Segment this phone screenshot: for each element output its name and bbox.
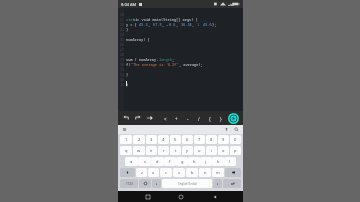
staticText: ;	[172, 57, 175, 62]
button[interactable]: Backspace	[225, 168, 241, 177]
button[interactable]: ?123	[120, 179, 138, 188]
button[interactable]: i	[206, 146, 217, 155]
staticText: m	[216, 170, 220, 175]
button[interactable]: 2	[133, 135, 145, 144]
staticText: y	[186, 148, 189, 153]
staticText: k	[217, 159, 220, 164]
button[interactable]: b	[186, 168, 198, 177]
button[interactable]: 9	[218, 135, 229, 144]
button[interactable]: 7	[194, 135, 205, 144]
staticText: 1	[125, 137, 128, 142]
staticText: v	[178, 170, 181, 175]
staticText: f	[169, 159, 171, 164]
staticText: 8.6	[169, 22, 176, 27]
staticText: 34	[120, 83, 124, 87]
button[interactable]: e	[146, 146, 157, 155]
staticText: <	[164, 116, 167, 122]
button[interactable]: Menu	[122, 127, 127, 132]
button[interactable]: k	[212, 157, 224, 166]
staticText: 33	[120, 78, 124, 82]
button[interactable]: English (India)	[162, 179, 212, 188]
button[interactable]: Tab	[146, 114, 154, 122]
button[interactable]: t	[170, 146, 181, 155]
staticText: "The average is: %.2f"	[131, 62, 179, 67]
button[interactable]: q	[120, 146, 132, 155]
staticText: 22	[120, 23, 124, 27]
staticText: u	[198, 148, 201, 153]
staticText: 67.5	[153, 22, 162, 27]
button[interactable]: Voice input	[224, 127, 229, 132]
button[interactable]: Recents	[143, 192, 152, 201]
button[interactable]: 4	[158, 135, 169, 144]
staticText: 20	[120, 13, 124, 17]
staticText: length	[159, 57, 172, 62]
staticText: a	[130, 159, 133, 164]
button[interactable]: l	[224, 157, 236, 166]
button[interactable]: o	[218, 146, 229, 155]
button[interactable]: d	[151, 157, 164, 166]
button[interactable]: s	[138, 157, 151, 166]
button[interactable]: Redo	[134, 114, 142, 122]
button[interactable]: m	[212, 168, 224, 177]
staticText: w	[137, 148, 141, 153]
button[interactable]: Home	[176, 192, 185, 201]
button[interactable]: g	[176, 157, 188, 166]
button[interactable]: z	[136, 168, 147, 177]
button[interactable]: Emoji	[139, 179, 151, 188]
button[interactable]: p	[230, 146, 241, 155]
button[interactable]: 5	[170, 135, 181, 144]
staticText: j	[205, 159, 207, 164]
staticText: l	[229, 159, 231, 164]
button[interactable]: {	[206, 115, 213, 122]
button[interactable]: Run	[228, 113, 239, 124]
button[interactable]: w	[133, 146, 145, 155]
staticText: , -	[162, 22, 169, 27]
staticText: 32	[120, 73, 124, 77]
button[interactable]: +	[173, 115, 180, 122]
button[interactable]: Undo	[122, 114, 130, 122]
button[interactable]: Period	[213, 179, 222, 188]
button[interactable]: }	[217, 115, 224, 122]
button[interactable]: h	[188, 157, 200, 166]
button[interactable]: y	[182, 146, 193, 155]
button[interactable]: a	[125, 157, 138, 166]
button[interactable]: r	[158, 146, 169, 155]
button[interactable]: <	[162, 115, 169, 122]
button[interactable]: Back	[210, 192, 219, 201]
button[interactable]: n	[199, 168, 211, 177]
button[interactable]: 6	[182, 135, 193, 144]
button[interactable]: 8	[206, 135, 217, 144]
button[interactable]: Comma	[152, 179, 161, 188]
staticText: 30	[120, 63, 124, 67]
button[interactable]: Enter	[223, 179, 241, 188]
button[interactable]: Search	[234, 127, 239, 132]
button[interactable]: 0	[230, 135, 241, 144]
staticText: 45.3	[139, 22, 148, 27]
staticText: sta	[126, 17, 133, 22]
staticText: 24	[120, 33, 124, 37]
button[interactable]: f	[164, 157, 176, 166]
staticText: c	[165, 170, 167, 175]
staticText: r	[163, 148, 165, 153]
button[interactable]: u	[194, 146, 205, 155]
button[interactable]: c	[160, 168, 172, 177]
staticText: d	[156, 159, 159, 164]
staticText: 2	[138, 137, 141, 142]
staticText: {	[209, 116, 211, 122]
staticText: 5	[174, 137, 177, 142]
button[interactable]: j	[200, 157, 212, 166]
button[interactable]: /	[195, 115, 202, 122]
staticText: English (India)	[178, 182, 197, 186]
staticText: 7	[198, 137, 201, 142]
staticText: 26	[120, 43, 124, 47]
button[interactable]: -	[184, 115, 191, 122]
button[interactable]: x	[148, 168, 159, 177]
staticText: q	[125, 148, 128, 153]
button[interactable]: Shift	[120, 168, 135, 177]
button[interactable]: 1	[120, 135, 132, 144]
staticText: /	[198, 116, 200, 122]
staticText: x	[152, 170, 155, 175]
button[interactable]: 3	[146, 135, 157, 144]
button[interactable]: v	[173, 168, 185, 177]
